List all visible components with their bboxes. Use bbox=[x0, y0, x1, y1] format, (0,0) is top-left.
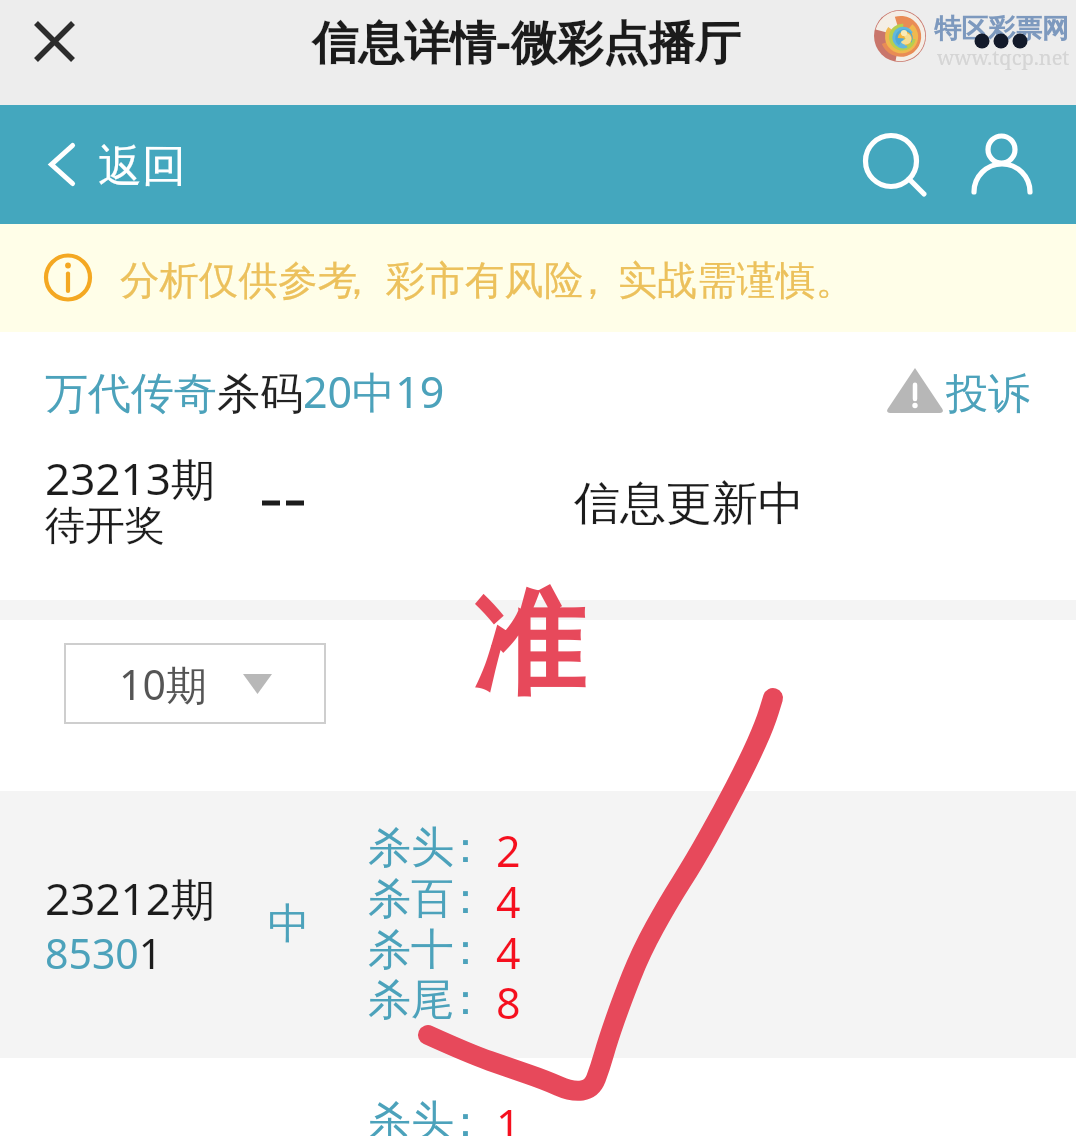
staticText: ， bbox=[337, 256, 377, 306]
button[interactable]: 23213期 待开奖 信息更新中 bbox=[0, 332, 1076, 600]
staticText: 4 bbox=[496, 923, 521, 982]
staticText: 10期 bbox=[119, 656, 207, 712]
staticText: ： bbox=[444, 923, 487, 977]
staticText: 信息详情-微彩点播厅 bbox=[312, 10, 741, 73]
button[interactable]: 投诉 bbox=[880, 356, 1040, 420]
button[interactable]: Close bbox=[19, 6, 89, 76]
staticText: 实战需谨慎。 bbox=[618, 256, 855, 306]
staticText: ， bbox=[573, 256, 613, 306]
staticText: www.tqcp.net bbox=[937, 44, 1070, 71]
staticText: 杀头 bbox=[368, 821, 454, 875]
staticText: ： bbox=[444, 872, 487, 926]
staticText: 1 bbox=[496, 1095, 521, 1136]
staticText: 杀头 bbox=[368, 1095, 454, 1136]
staticText: 4 bbox=[496, 872, 521, 931]
staticText: ： bbox=[444, 1095, 487, 1136]
staticText: 准 bbox=[472, 574, 585, 716]
button[interactable]: 10期 bbox=[64, 643, 326, 724]
staticText: 特区彩票网 bbox=[934, 12, 1069, 46]
button[interactable]: 23212期 85301 中 bbox=[0, 791, 1076, 1058]
staticText: 待开奖 bbox=[45, 500, 165, 550]
staticText: 投诉 bbox=[946, 368, 1030, 421]
staticText: 23212期 bbox=[45, 868, 215, 928]
staticText: 彩市有风险 bbox=[386, 256, 584, 306]
staticText: 2 bbox=[496, 821, 521, 880]
staticText: 返回 bbox=[98, 139, 186, 194]
button[interactable]: 返回 bbox=[36, 126, 206, 198]
staticText: 杀十 bbox=[368, 923, 454, 977]
staticText: 分析仅供参考 bbox=[120, 256, 357, 306]
button[interactable]: Search bbox=[848, 118, 936, 206]
other: Information bbox=[44, 253, 94, 303]
staticText: 8 bbox=[496, 973, 521, 1032]
staticText: ： bbox=[444, 973, 487, 1027]
staticText: 85301 bbox=[45, 925, 163, 981]
staticText: 中 bbox=[268, 898, 310, 951]
staticText: 23213期 bbox=[45, 448, 215, 508]
staticText: 信息更新中 bbox=[574, 475, 804, 533]
staticText: 万代传奇杀码20中19 bbox=[45, 362, 445, 421]
staticText: 杀尾 bbox=[368, 973, 454, 1027]
staticText: ： bbox=[444, 821, 487, 875]
button[interactable]: Profile bbox=[965, 118, 1053, 206]
staticText: 杀百 bbox=[368, 872, 454, 926]
